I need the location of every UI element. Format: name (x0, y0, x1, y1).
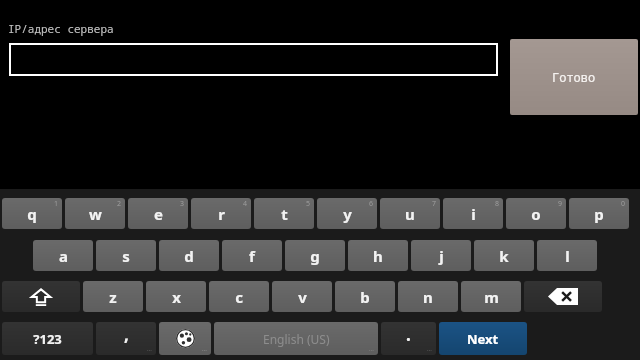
staticText: l (565, 246, 570, 266)
button[interactable]: l (537, 240, 597, 271)
staticText: 2 (117, 199, 122, 209)
staticText: Готово (552, 69, 596, 85)
staticText: r (218, 204, 225, 224)
button[interactable]: z (83, 281, 143, 312)
button[interactable]: Switch language (159, 322, 211, 355)
button[interactable]: Period (381, 322, 436, 355)
staticText: 0 (621, 199, 626, 209)
button[interactable]: Comma (96, 322, 156, 355)
staticText: ... (369, 345, 374, 353)
button[interactable]: e (128, 198, 188, 229)
button[interactable]: o (506, 198, 566, 229)
staticText: o (531, 204, 541, 224)
staticText: h (373, 246, 383, 266)
staticText: 1 (54, 199, 59, 209)
button[interactable]: a (33, 240, 93, 271)
staticText: English (US) (263, 331, 330, 347)
staticText: 4 (243, 199, 248, 209)
staticText: t (281, 204, 288, 224)
button[interactable]: u (380, 198, 440, 229)
staticText: s (122, 246, 130, 266)
staticText: q (27, 204, 37, 224)
staticText: z (109, 287, 117, 307)
staticText: IP/адрес сервера (8, 21, 114, 36)
staticText: 5 (306, 199, 311, 209)
staticText: , (124, 323, 129, 346)
button[interactable]: y (317, 198, 377, 229)
button[interactable]: Next (439, 322, 527, 355)
button[interactable]: k (474, 240, 534, 271)
staticText: . (406, 323, 411, 346)
button[interactable]: w (65, 198, 125, 229)
staticText: x (172, 287, 181, 307)
staticText: p (594, 204, 604, 224)
button[interactable]: i (443, 198, 503, 229)
staticText: c (235, 287, 243, 307)
staticText: v (298, 287, 307, 307)
staticText: d (184, 246, 194, 266)
staticText: j (439, 246, 444, 266)
button[interactable]: p (569, 198, 629, 229)
button[interactable]: q (2, 198, 62, 229)
staticText: y (343, 204, 352, 224)
staticText: 6 (369, 199, 374, 209)
staticText: m (484, 287, 499, 307)
staticText: 9 (558, 199, 563, 209)
button[interactable]: s (96, 240, 156, 271)
staticText: e (154, 204, 163, 224)
staticText: ... (202, 345, 207, 353)
staticText: i (471, 204, 476, 224)
staticText: 3 (180, 199, 185, 209)
button[interactable]: b (335, 281, 395, 312)
button[interactable]: v (272, 281, 332, 312)
button[interactable]: j (411, 240, 471, 271)
button[interactable]: t (254, 198, 314, 229)
staticText: Next (467, 330, 499, 348)
button[interactable]: n (398, 281, 458, 312)
staticText: a (59, 246, 68, 266)
button[interactable]: Готово (510, 39, 638, 115)
button[interactable]: English (US) (214, 322, 378, 355)
button[interactable]: x (146, 281, 206, 312)
button[interactable]: r (191, 198, 251, 229)
button[interactable]: g (285, 240, 345, 271)
button[interactable]: Shift (2, 281, 80, 312)
staticText: w (89, 204, 102, 224)
staticText: f (249, 246, 255, 266)
staticText: 7 (432, 199, 437, 209)
button[interactable]: h (348, 240, 408, 271)
staticText: ... (147, 345, 152, 353)
staticText: u (405, 204, 415, 224)
staticText: 8 (495, 199, 500, 209)
button[interactable]: ?123 (2, 322, 93, 355)
button[interactable]: d (159, 240, 219, 271)
button[interactable] (9, 43, 498, 76)
button[interactable]: f (222, 240, 282, 271)
staticText: n (423, 287, 433, 307)
staticText: b (360, 287, 370, 307)
button[interactable]: Backspace (524, 281, 602, 312)
staticText: k (499, 246, 509, 266)
button[interactable]: m (461, 281, 521, 312)
staticText: g (310, 246, 320, 266)
button[interactable]: c (209, 281, 269, 312)
staticText: ... (427, 345, 432, 353)
staticText: ?123 (33, 330, 62, 348)
